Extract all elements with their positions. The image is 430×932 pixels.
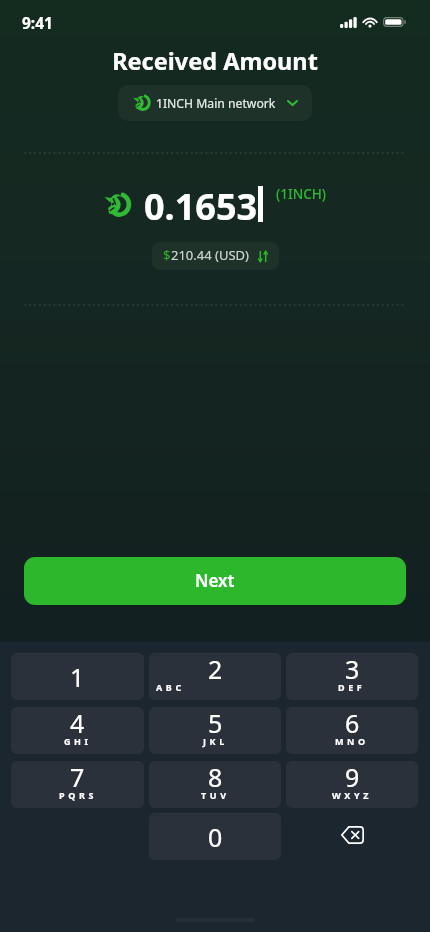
staticText: 1 (70, 660, 85, 694)
staticText: DEF (338, 681, 366, 693)
staticText: Next (195, 569, 235, 592)
staticText: 0.1653 (144, 182, 258, 231)
staticText: 5 (208, 707, 223, 740)
button[interactable]: 7 (11, 761, 144, 808)
staticText: TUV (201, 789, 230, 801)
staticText: 9 (345, 761, 360, 794)
button[interactable]: 1INCH Main network (118, 85, 312, 121)
staticText: 3 (345, 653, 360, 686)
staticText: 4 (70, 707, 85, 740)
button[interactable]: Delete (286, 813, 418, 860)
button[interactable]: 8 (149, 761, 281, 808)
staticText: 0 (208, 820, 223, 854)
staticText: 9:41 (22, 12, 53, 33)
button[interactable]: 4 (11, 707, 144, 754)
staticText: ABC (156, 681, 185, 693)
staticText: JKL (203, 735, 228, 747)
staticText: (1INCH) (276, 185, 327, 203)
staticText: 8 (208, 761, 223, 794)
staticText: 7 (70, 761, 85, 794)
staticText: 6 (345, 707, 360, 740)
button[interactable]: 3 (286, 653, 418, 700)
button[interactable]: 6 (286, 707, 418, 754)
staticText: GHI (64, 735, 92, 747)
button[interactable]: 2 (149, 653, 281, 700)
staticText: 1INCH Main network (156, 95, 276, 112)
staticText: 210.44 (USD) (171, 246, 249, 264)
button[interactable]: 0 (149, 813, 281, 860)
staticText: 2 (208, 653, 223, 686)
button[interactable]: 9 (286, 761, 418, 808)
button[interactable]: Next (24, 557, 406, 605)
staticText: MNO (335, 735, 369, 747)
staticText: PQRS (59, 789, 97, 801)
button[interactable]: $ (152, 242, 279, 270)
staticText: WXYZ (332, 789, 372, 801)
button[interactable]: 1 (11, 653, 144, 700)
button[interactable]: 5 (149, 707, 281, 754)
staticText: $ (163, 246, 171, 264)
staticText: Received Amount (0, 45, 430, 77)
